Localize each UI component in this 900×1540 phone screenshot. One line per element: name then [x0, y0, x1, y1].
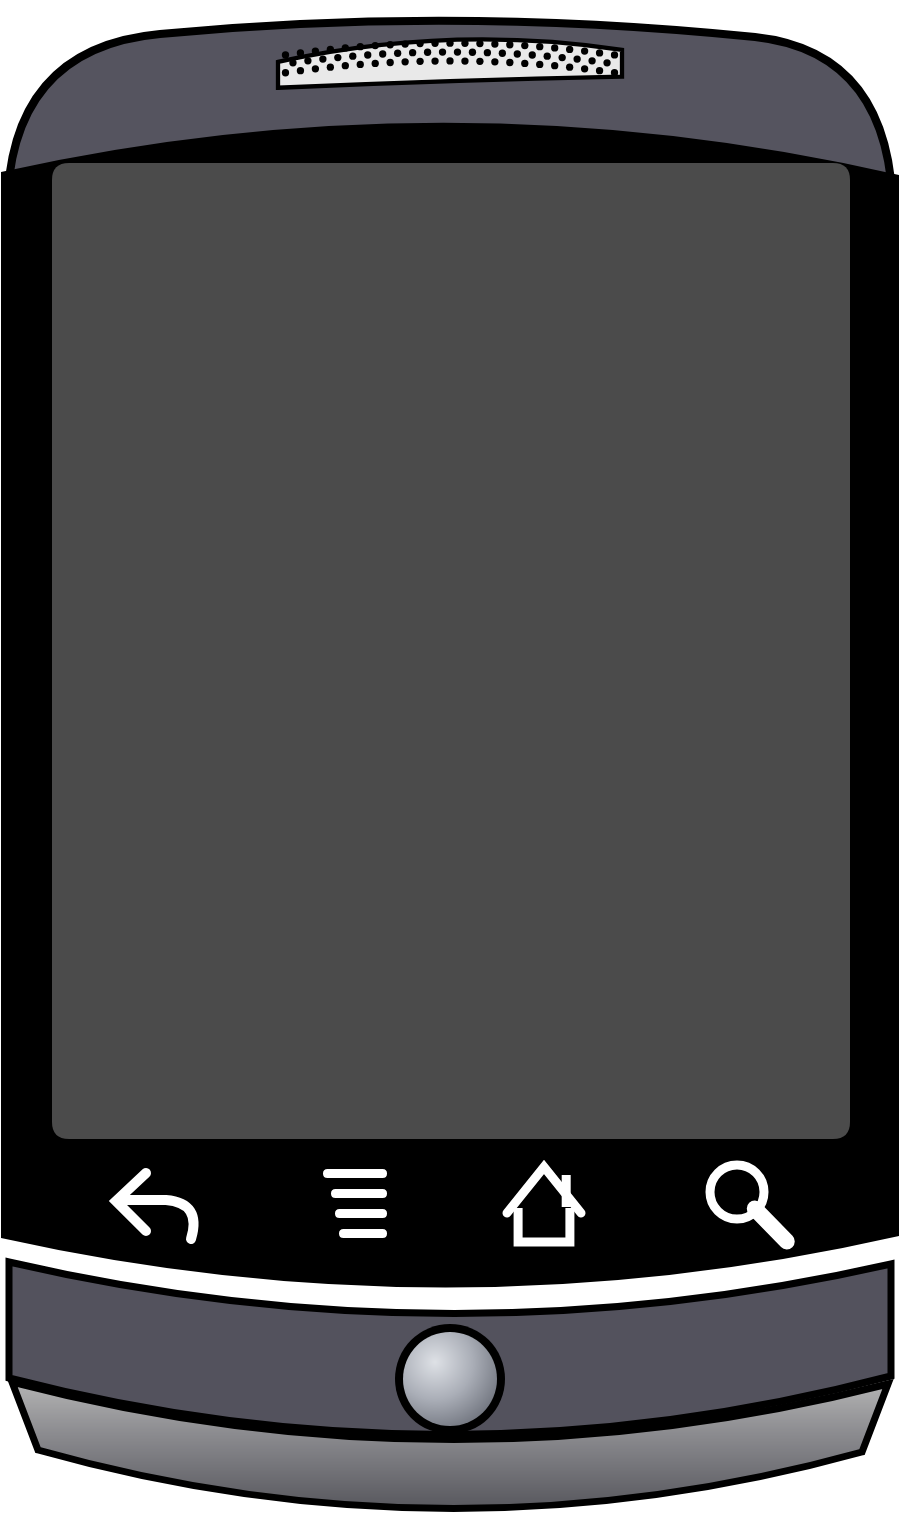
button[interactable]: Trackball [390, 1320, 510, 1440]
button[interactable]: Search [697, 1158, 797, 1254]
button[interactable]: Back [106, 1158, 206, 1254]
button[interactable]: Home [497, 1158, 597, 1254]
button[interactable]: Menu [305, 1158, 405, 1254]
